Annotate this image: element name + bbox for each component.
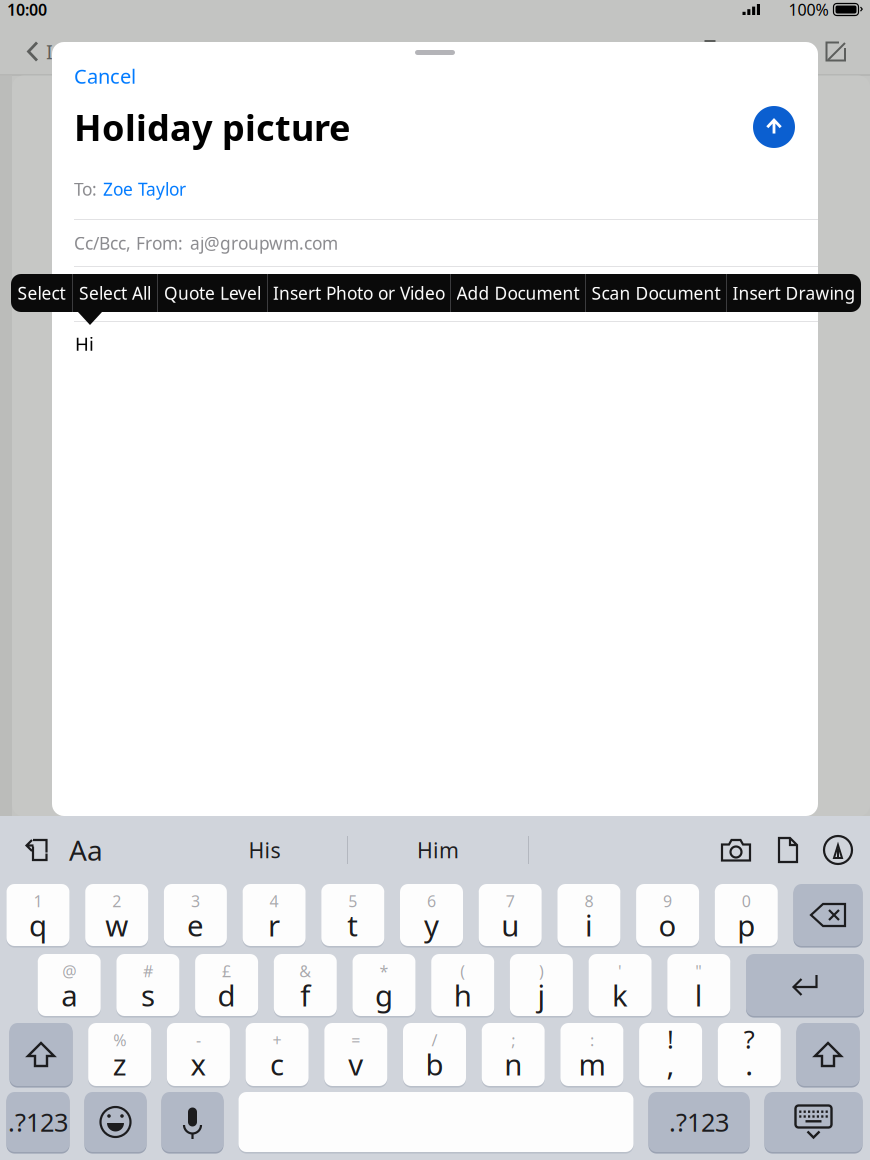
staticText: & (299, 960, 311, 982)
button[interactable]: ( (431, 954, 494, 1016)
button[interactable] (238, 1092, 633, 1152)
button[interactable]: .?123 (6, 1092, 69, 1152)
button[interactable]: 1 (6, 884, 69, 946)
button[interactable]: Inbox (26, 31, 100, 71)
button[interactable]: Insert Drawing (727, 274, 861, 312)
staticText: " (695, 960, 702, 982)
staticText: e (187, 905, 204, 944)
staticText: Him (417, 836, 459, 864)
staticText: s (141, 975, 155, 1014)
button[interactable]: Move to folder (758, 39, 787, 64)
button[interactable]: Cc/Bcc, From: (52, 220, 818, 266)
staticText: 9 (663, 890, 672, 912)
staticText: To: (74, 177, 97, 200)
button[interactable]: 0 (715, 884, 778, 946)
staticText: z (113, 1044, 127, 1083)
button[interactable]: Delete (697, 39, 723, 64)
button[interactable]: 4 (243, 884, 306, 946)
button[interactable]: = (324, 1023, 387, 1086)
button[interactable]: Compose (824, 40, 848, 63)
staticText: Holiday picture (74, 103, 350, 151)
button[interactable]: & (274, 954, 337, 1016)
staticText: l (695, 975, 703, 1014)
button[interactable]: Shift (796, 1023, 859, 1086)
staticText: Inbox (46, 38, 100, 65)
staticText: 7 (506, 890, 515, 912)
button[interactable]: / (403, 1023, 466, 1086)
button[interactable]: ) (510, 954, 573, 1016)
button[interactable]: Shift (9, 1023, 72, 1086)
button[interactable]: To: (52, 173, 818, 205)
staticText: % (113, 1029, 126, 1051)
staticText: 3 (191, 890, 200, 912)
staticText: Hi (75, 331, 94, 356)
button[interactable]: Dismiss Keyboard (764, 1092, 862, 1152)
button[interactable]: 2 (85, 884, 148, 946)
staticText: o (659, 905, 677, 944)
button[interactable]: # (116, 954, 179, 1016)
staticText: = (351, 1029, 360, 1051)
button[interactable]: His (182, 828, 347, 872)
button[interactable]: 9 (636, 884, 699, 946)
button[interactable]: Dictate (161, 1092, 223, 1152)
button[interactable]: Aa (69, 833, 103, 867)
button[interactable]: Select All (73, 274, 157, 312)
staticText: 0 (742, 890, 751, 912)
button[interactable]: £ (195, 954, 258, 1016)
button[interactable]: - (167, 1023, 230, 1086)
button[interactable]: Delete (793, 884, 862, 946)
staticText: v (348, 1044, 363, 1083)
button[interactable]: Select (11, 274, 72, 312)
staticText: a (61, 975, 77, 1014)
button[interactable] (52, 267, 818, 321)
button[interactable]: : (560, 1023, 623, 1086)
button[interactable]: Quote Level (158, 274, 267, 312)
button[interactable]: % (88, 1023, 151, 1086)
staticText: - (196, 1029, 201, 1051)
staticText: ' (618, 960, 622, 982)
button[interactable]: .?123 (648, 1092, 749, 1152)
button[interactable]: ' (589, 954, 652, 1016)
button[interactable]: Document (777, 836, 799, 864)
button[interactable]: Return (746, 954, 864, 1016)
button[interactable]: + (246, 1023, 309, 1086)
staticText: Select (17, 281, 65, 304)
button[interactable]: 7 (479, 884, 542, 946)
staticText: Add Document (456, 281, 579, 304)
button[interactable]: ! (639, 1023, 702, 1086)
staticText: u (501, 905, 519, 944)
staticText: 100% (788, 0, 828, 20)
button[interactable]: 8 (557, 884, 620, 946)
button[interactable]: ; (482, 1023, 545, 1086)
button[interactable]: Scan Document (586, 274, 726, 312)
staticText: ; (511, 1029, 515, 1051)
button[interactable]: * (352, 954, 415, 1016)
button[interactable]: " (667, 954, 730, 1016)
button[interactable]: 6 (400, 884, 463, 946)
button[interactable]: Camera (720, 836, 752, 863)
staticText: ( (460, 960, 465, 982)
staticText: * (379, 960, 388, 982)
button[interactable]: Cancel (52, 64, 150, 88)
button[interactable]: Emoji (84, 1092, 146, 1152)
button[interactable]: Add Document (451, 274, 585, 312)
staticText: f (300, 975, 310, 1014)
button[interactable]: Send (753, 106, 795, 148)
staticText: x (190, 1044, 206, 1083)
staticText: 6 (427, 890, 436, 912)
button[interactable]: 5 (321, 884, 384, 946)
button[interactable]: ? (718, 1023, 781, 1086)
button[interactable]: Him (348, 828, 528, 872)
button[interactable]: @ (38, 954, 101, 1016)
staticText: Select All (79, 281, 151, 304)
button[interactable]: Markup (824, 836, 852, 864)
staticText: r (268, 905, 280, 944)
staticText: q (29, 905, 47, 944)
staticText: Zoe Taylor (103, 177, 186, 200)
button[interactable]: 3 (164, 884, 227, 946)
button[interactable]: Insert Photo or Video (268, 274, 450, 312)
staticText: aj@groupwm.com (190, 231, 338, 254)
staticText: d (218, 975, 236, 1014)
staticText: p (737, 905, 755, 944)
button[interactable]: Undo (24, 837, 49, 862)
